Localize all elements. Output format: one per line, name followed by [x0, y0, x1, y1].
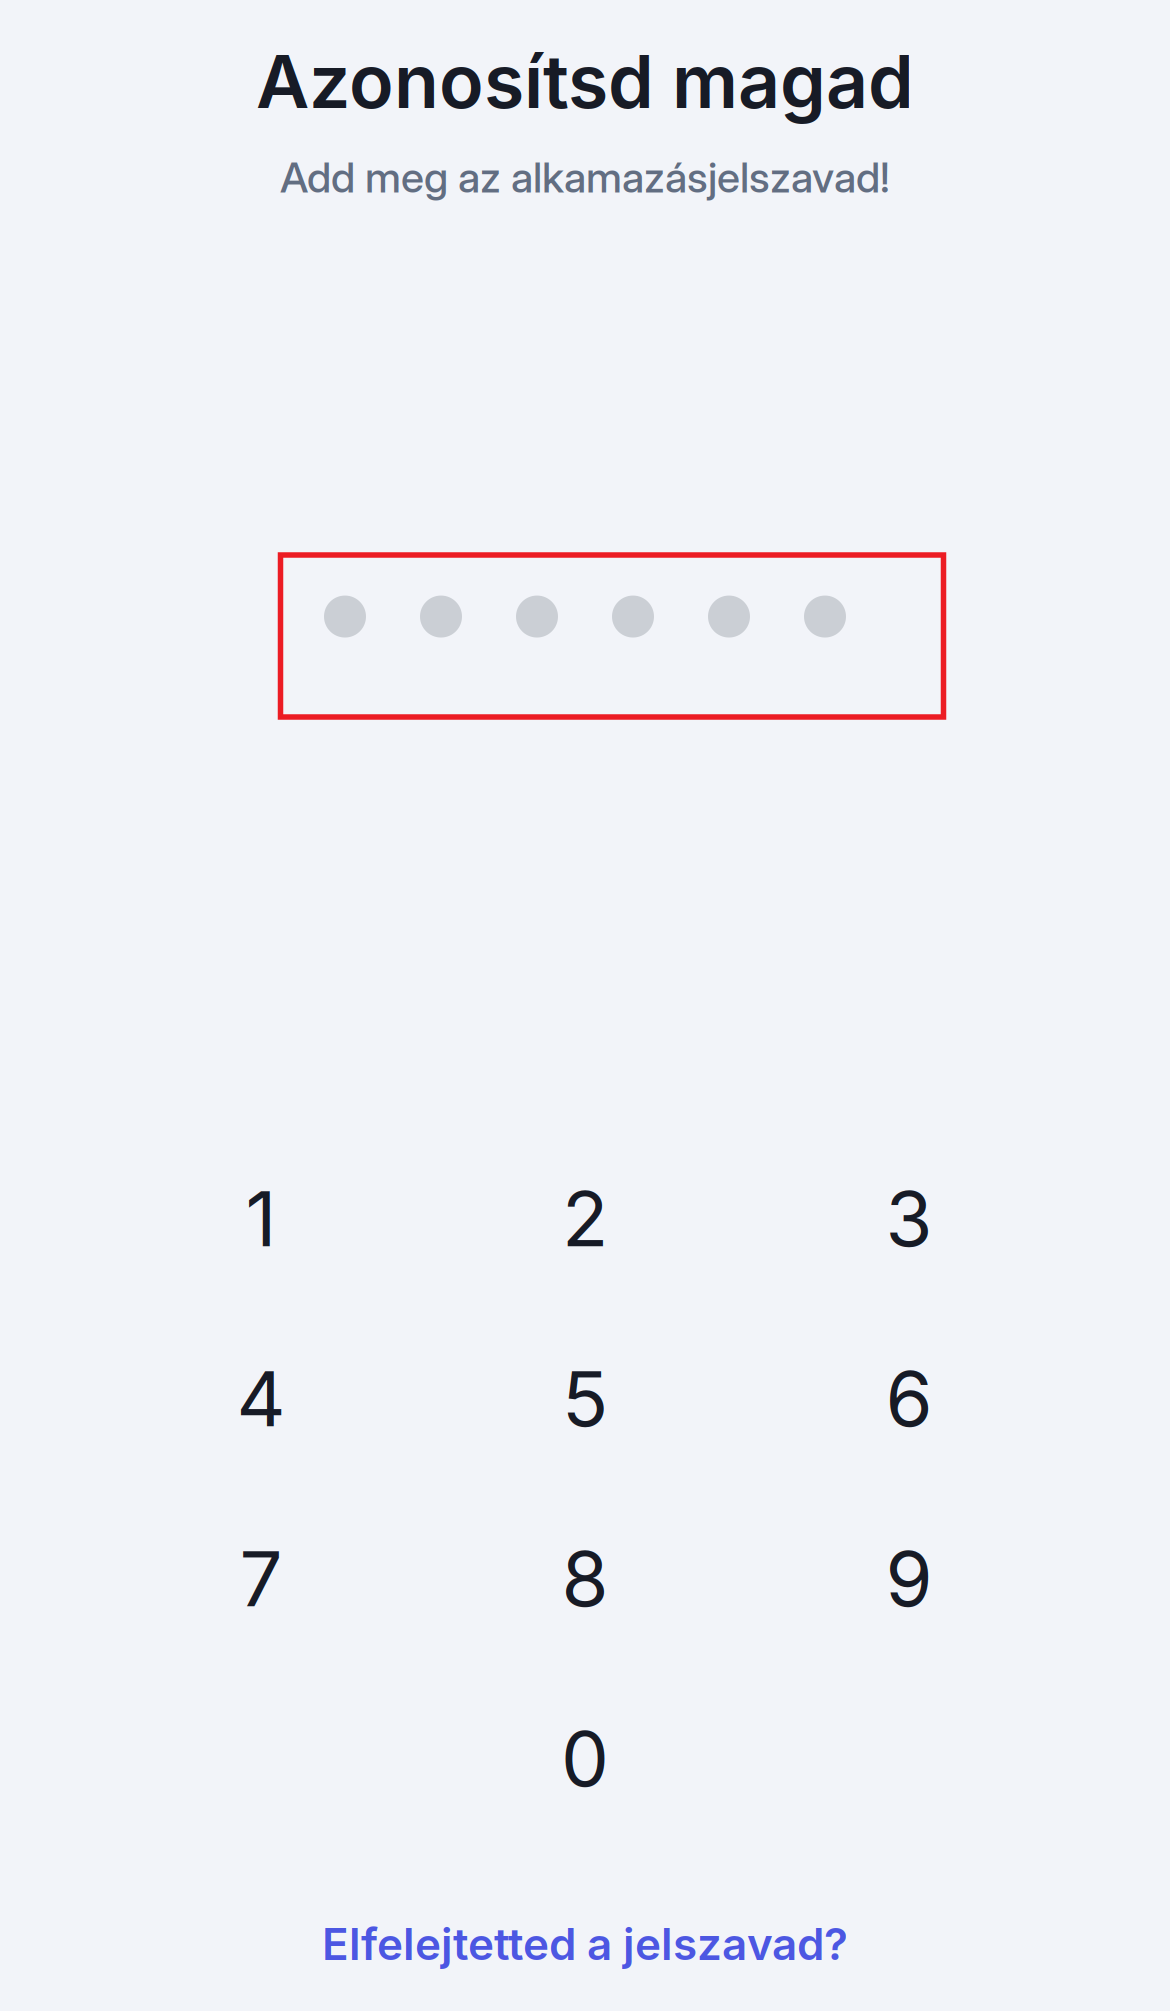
button[interactable]: 2 — [423, 1128, 747, 1308]
staticText: 1 — [245, 1173, 276, 1265]
button[interactable]: 1 — [99, 1128, 423, 1308]
staticText: Add meg az alkamazásjelszavad! — [280, 152, 890, 202]
button[interactable]: Passcode field, 6 digits — [251, 595, 919, 637]
staticText: 3 — [885, 1173, 932, 1265]
button[interactable]: 3 — [747, 1128, 1071, 1308]
button[interactable]: 9 — [747, 1488, 1071, 1668]
button[interactable]: 0 — [423, 1668, 747, 1848]
staticText: 4 — [236, 1353, 285, 1445]
button[interactable]: 8 — [423, 1488, 747, 1668]
staticText: Elfelejtetted a jelszavad? — [322, 1917, 848, 1971]
button[interactable]: 6 — [747, 1308, 1071, 1488]
staticText: 6 — [885, 1353, 932, 1445]
staticText: 0 — [561, 1713, 609, 1805]
button[interactable]: Elfelejtetted a jelszavad? — [235, 1909, 935, 1979]
button[interactable]: 5 — [423, 1308, 747, 1488]
button[interactable]: 4 — [99, 1308, 423, 1488]
staticText: 2 — [562, 1173, 608, 1265]
staticText: 9 — [885, 1533, 932, 1625]
staticText: Azonosítsd magad — [256, 37, 914, 126]
staticText: 8 — [561, 1533, 608, 1625]
staticText: 7 — [239, 1533, 282, 1625]
staticText: 5 — [562, 1353, 608, 1445]
button[interactable]: 7 — [99, 1488, 423, 1668]
